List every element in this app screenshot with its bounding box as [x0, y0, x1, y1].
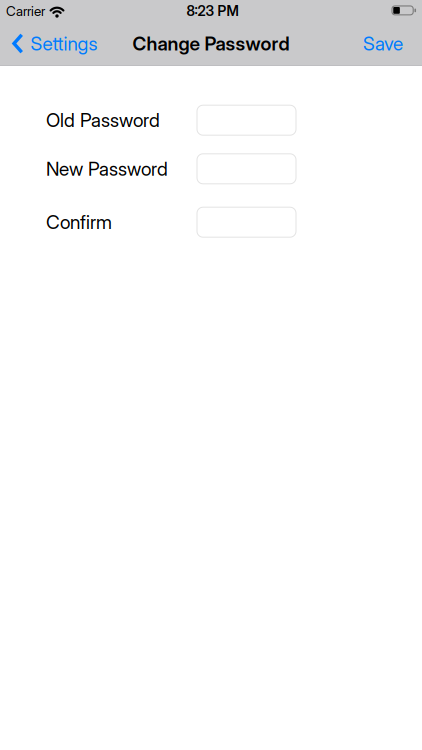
button[interactable]: Old Password	[196, 105, 296, 136]
staticText: 8:23 PM	[186, 2, 238, 19]
staticText: Settings	[30, 32, 97, 55]
button[interactable]: New Password	[196, 153, 296, 184]
button[interactable]: Save	[363, 21, 403, 65]
button[interactable]: Confirm	[196, 207, 296, 238]
button[interactable]: Settings	[12, 32, 97, 55]
staticText: Carrier	[6, 3, 45, 19]
staticText: Change Password	[132, 32, 289, 55]
staticText: New Password	[46, 157, 168, 180]
staticText: Save	[363, 32, 403, 55]
staticText: Old Password	[46, 109, 160, 132]
staticText: Confirm	[46, 211, 112, 234]
